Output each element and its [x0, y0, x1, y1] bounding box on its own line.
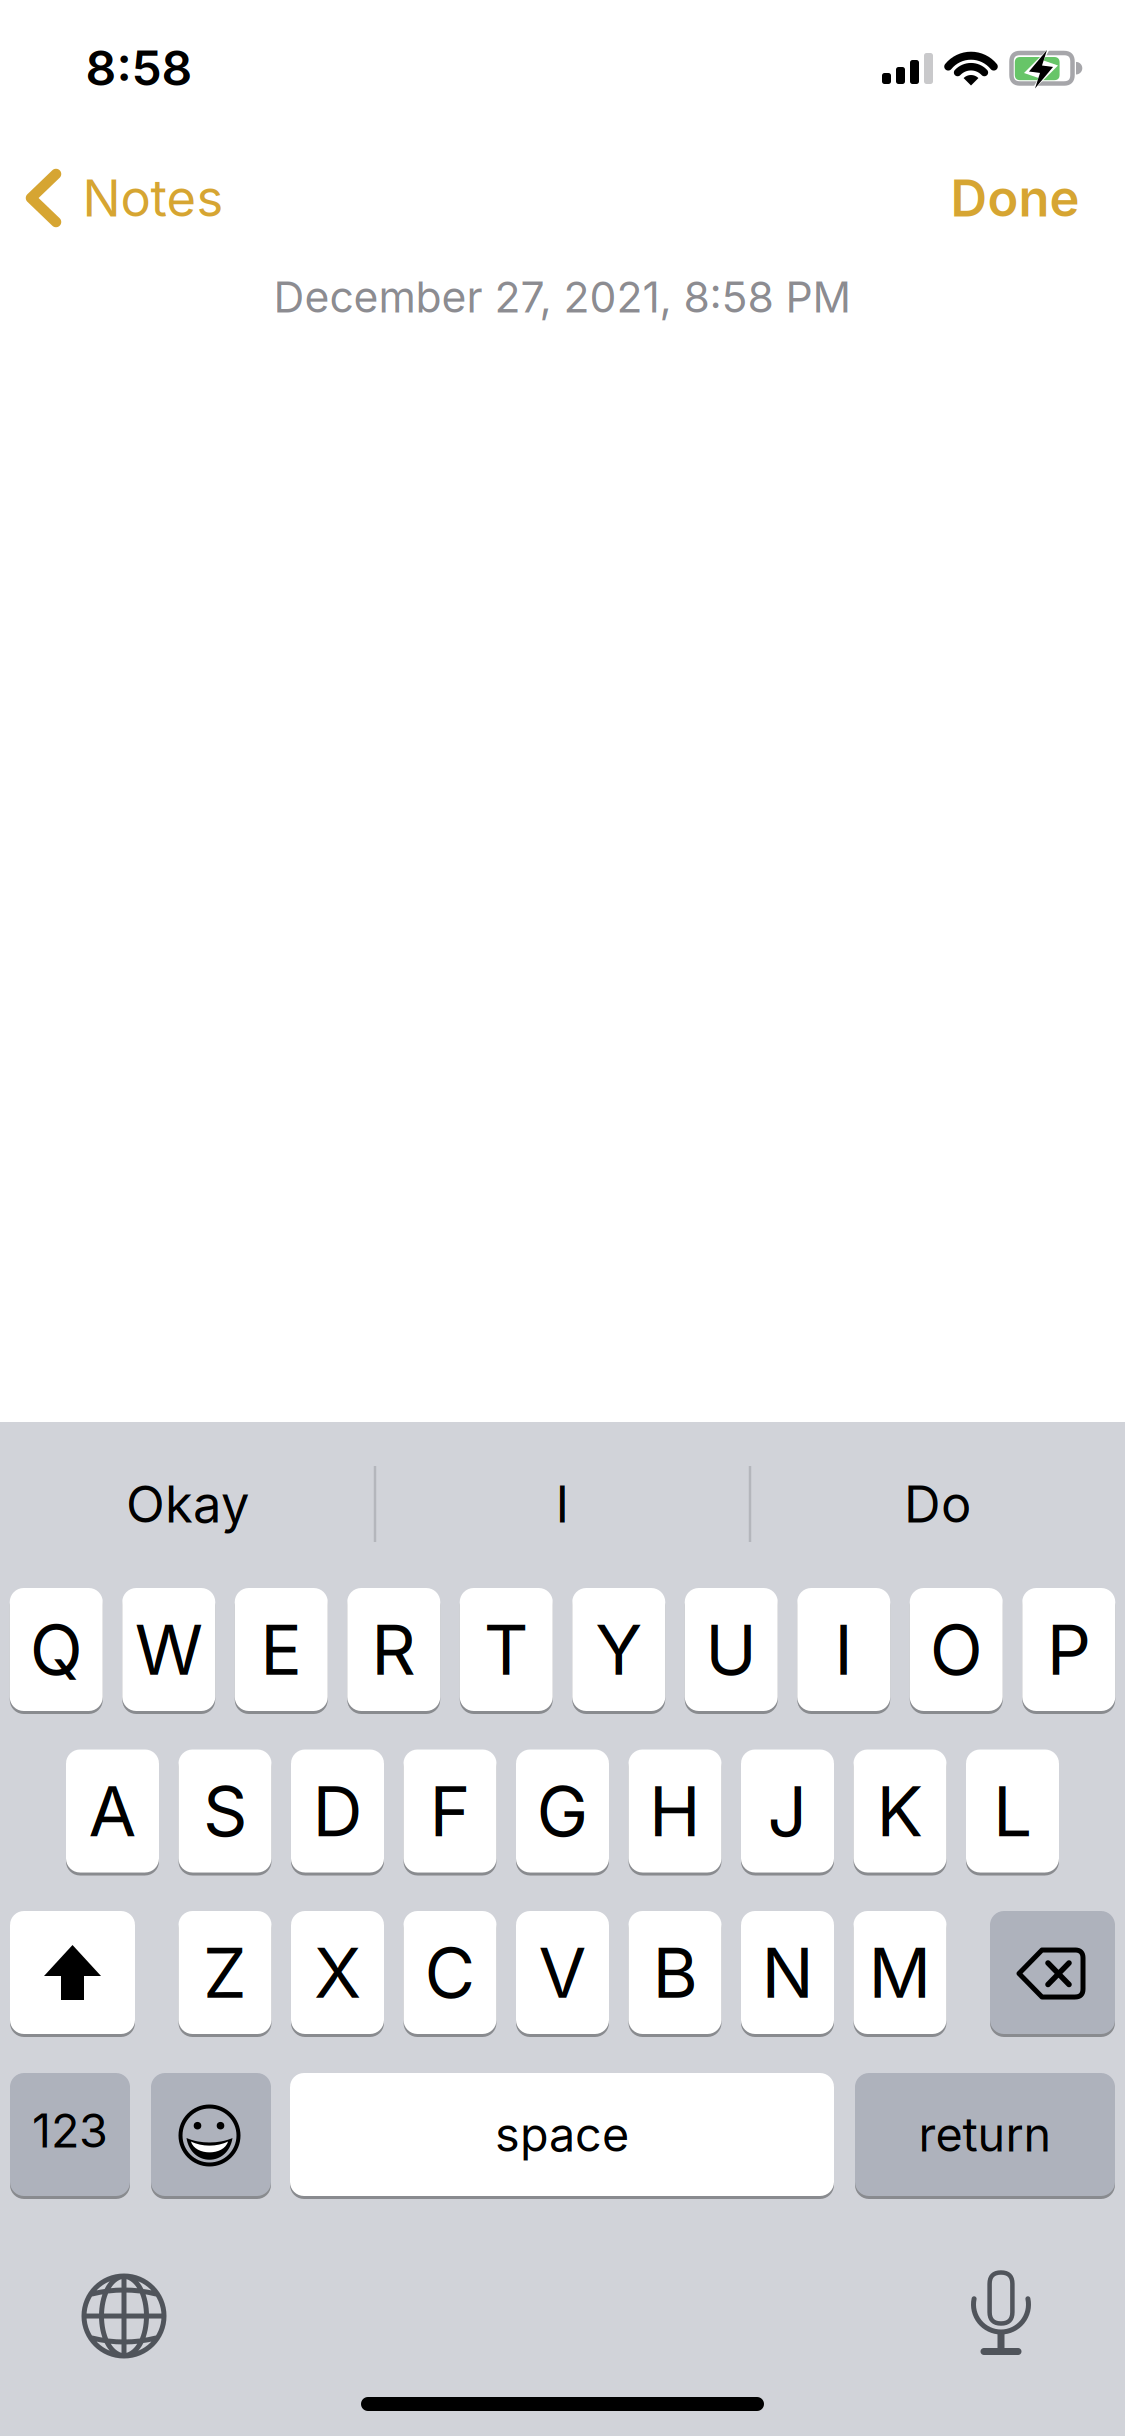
staticText: S: [203, 1770, 247, 1852]
staticText: B: [652, 1932, 697, 2013]
staticText: M: [868, 1932, 931, 2013]
button[interactable]: return: [855, 2073, 1115, 2196]
staticText: Z: [203, 1932, 247, 2013]
staticText: 123: [32, 2103, 108, 2158]
staticText: Q: [30, 1609, 83, 1690]
staticText: Y: [595, 1609, 642, 1690]
staticText: P: [1047, 1609, 1091, 1690]
staticText: J: [767, 1770, 807, 1852]
staticText: T: [484, 1609, 529, 1690]
button[interactable]: V: [516, 1911, 609, 2034]
staticText: U: [705, 1609, 757, 1690]
button[interactable]: I: [377, 1444, 748, 1564]
button[interactable]: X: [291, 1911, 384, 2034]
button[interactable]: T: [460, 1588, 553, 1711]
staticText: Okay: [126, 1474, 249, 1534]
button[interactable]: Okay: [2, 1444, 373, 1564]
button[interactable]: J: [741, 1749, 834, 1872]
button[interactable]: Delete: [990, 1911, 1115, 2034]
button[interactable]: Emoji: [151, 2073, 271, 2196]
button[interactable]: space: [290, 2073, 834, 2196]
button[interactable]: Q: [10, 1588, 103, 1711]
staticText: N: [761, 1932, 813, 2013]
button[interactable]: O: [910, 1588, 1003, 1711]
button[interactable]: D: [291, 1749, 384, 1872]
staticText: C: [424, 1932, 475, 2013]
staticText: G: [536, 1770, 588, 1852]
staticText: Notes: [82, 168, 223, 228]
button[interactable]: M: [853, 1911, 946, 2034]
button[interactable]: G: [516, 1749, 609, 1872]
staticText: I: [555, 1474, 569, 1534]
staticText: Done: [950, 168, 1079, 228]
button[interactable]: A: [66, 1749, 159, 1872]
button[interactable]: Next keyboard: [78, 2270, 170, 2362]
staticText: V: [538, 1932, 586, 2013]
button[interactable]: Z: [178, 1911, 271, 2034]
staticText: December 27, 2021, 8:58 PM: [273, 272, 851, 322]
staticText: L: [993, 1770, 1032, 1852]
button[interactable]: L: [966, 1749, 1059, 1872]
button[interactable]: Numbers: [10, 2073, 130, 2196]
staticText: 8:58: [85, 40, 192, 96]
staticText: O: [930, 1609, 983, 1690]
button[interactable]: Back to Notes: [0, 0, 1125, 2436]
button[interactable]: H: [628, 1749, 721, 1872]
button[interactable]: F: [403, 1749, 496, 1872]
staticText: W: [135, 1609, 203, 1690]
button[interactable]: N: [741, 1911, 834, 2034]
button[interactable]: I: [797, 1588, 890, 1711]
staticText: D: [312, 1770, 362, 1852]
button[interactable]: P: [1022, 1588, 1115, 1711]
staticText: I: [834, 1609, 853, 1690]
staticText: space: [495, 2107, 629, 2162]
staticText: K: [876, 1770, 923, 1852]
button[interactable]: Dictation: [969, 2265, 1033, 2359]
staticText: return: [918, 2107, 1051, 2162]
button[interactable]: Do: [752, 1444, 1123, 1564]
staticText: F: [429, 1770, 470, 1852]
staticText: X: [314, 1932, 361, 2013]
button[interactable]: R: [347, 1588, 440, 1711]
button[interactable]: B: [628, 1911, 721, 2034]
button[interactable]: U: [685, 1588, 778, 1711]
button[interactable]: Done: [950, 168, 1079, 228]
staticText: Do: [904, 1474, 971, 1534]
staticText: H: [649, 1770, 701, 1852]
staticText: E: [260, 1609, 302, 1690]
button[interactable]: E: [235, 1588, 328, 1711]
button[interactable]: Y: [572, 1588, 665, 1711]
button[interactable]: C: [403, 1911, 496, 2034]
staticText: R: [371, 1609, 416, 1690]
button[interactable]: S: [178, 1749, 271, 1872]
button[interactable]: W: [122, 1588, 215, 1711]
button[interactable]: Shift: [10, 1911, 135, 2034]
staticText: A: [88, 1770, 136, 1852]
button[interactable]: K: [853, 1749, 946, 1872]
